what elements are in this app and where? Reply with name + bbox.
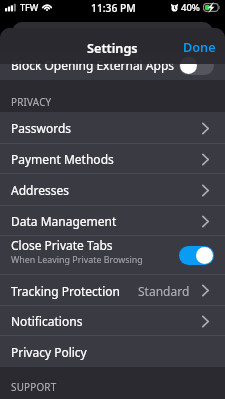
staticText: SUPPORT [11, 380, 57, 393]
staticText: Privacy Policy [11, 344, 213, 360]
button[interactable]: Tracking Protection [0, 275, 225, 306]
staticText: TFW [20, 1, 39, 13]
button[interactable]: Done [172, 32, 225, 61]
button[interactable]: Block Opening External Apps [0, 50, 225, 80]
staticText: Tracking Protection [11, 283, 138, 299]
staticText: Payment Methods [11, 151, 190, 167]
staticText: Block Opening External Apps [11, 57, 175, 73]
button[interactable]: Passwords [0, 112, 225, 144]
staticText: Close Private Tabs [11, 237, 113, 253]
staticText: PRIVACY [11, 95, 52, 108]
button[interactable]: Data Management [0, 206, 225, 236]
staticText: Notifications [11, 313, 190, 329]
button[interactable]: Close Private Tabs [0, 236, 225, 275]
staticText: Passwords [11, 120, 190, 136]
button[interactable]: Addresses [0, 174, 225, 206]
staticText: Done [183, 38, 216, 55]
staticText: 11:36 PM [91, 1, 136, 15]
staticText: When Leaving Private Browsing [11, 253, 143, 265]
button[interactable]: Privacy Policy [0, 336, 225, 367]
button[interactable]: Payment Methods [0, 144, 225, 174]
staticText: Settings [87, 39, 138, 56]
staticText: Addresses [11, 182, 190, 198]
staticText: Standard [138, 283, 190, 299]
staticText: 40% [181, 1, 200, 14]
staticText: Data Management [11, 213, 190, 229]
button[interactable]: Notifications [0, 306, 225, 336]
